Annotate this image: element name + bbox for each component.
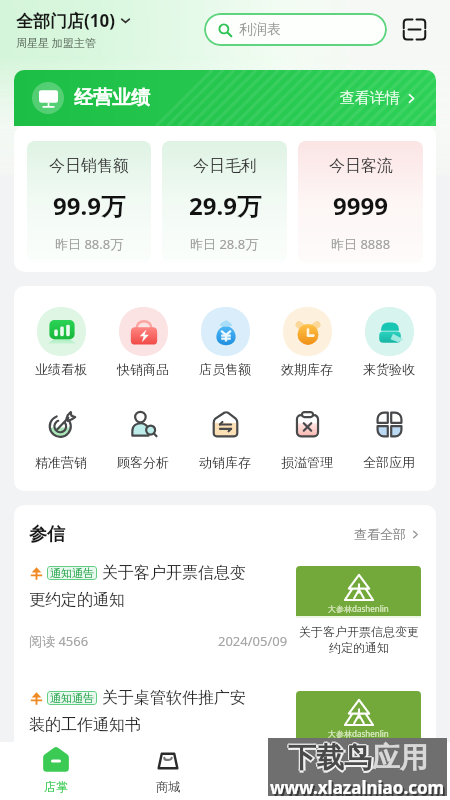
staticText: 昨日 8888 <box>331 235 391 253</box>
staticText: 业绩看板 <box>35 361 87 377</box>
button[interactable]: 商城 <box>112 742 224 800</box>
button[interactable]: 顾客分析 <box>102 400 184 470</box>
staticText: 损溢管理 <box>281 454 333 470</box>
staticText: 关于客户开票信息变 <box>102 563 246 583</box>
button[interactable]: 消息 <box>224 742 337 800</box>
button[interactable]: 动销库存 <box>184 400 266 470</box>
staticText: 店掌 <box>44 779 68 794</box>
staticText: 利润表 <box>239 21 281 39</box>
staticText: 2024/05/09 <box>218 632 288 650</box>
button[interactable]: 通知通告 <box>29 688 421 788</box>
staticText: 动销库存 <box>199 454 251 470</box>
button[interactable]: 通知通告 <box>29 563 421 688</box>
staticText: 更约定的通知 <box>29 590 125 610</box>
button[interactable]: 精准营销 <box>20 400 102 470</box>
staticText: 今日销售额 <box>49 156 129 176</box>
staticText: 约定的通知 <box>329 640 389 655</box>
staticText: 9999 <box>333 189 388 222</box>
staticText: 今日客流 <box>329 156 393 176</box>
button[interactable]: 快销商品 <box>102 307 184 377</box>
staticText: 商城 <box>156 779 180 794</box>
staticText: 全部应用 <box>363 454 415 470</box>
staticText: 下载鸟 <box>290 740 374 775</box>
staticText: 我的 <box>382 779 406 794</box>
staticText: 下载鸟 <box>288 742 372 777</box>
button[interactable]: 全部应用 <box>348 400 430 470</box>
button[interactable]: 我的 <box>337 742 450 800</box>
button[interactable]: 来货验收 <box>348 307 430 377</box>
button[interactable]: 效期库存 <box>266 307 348 377</box>
staticText: 查看全部 <box>354 526 406 542</box>
button[interactable]: 经营业绩 <box>14 70 436 126</box>
staticText: 下载鸟 <box>288 740 372 775</box>
staticText: 昨日 88.8万 <box>55 235 124 253</box>
staticText: 全部门店(10) <box>16 9 115 32</box>
staticText: 装的工作通知书 <box>29 715 141 735</box>
button[interactable]: Scan code <box>399 14 429 44</box>
staticText: 效期库存 <box>281 361 333 377</box>
staticText: 店员售额 <box>199 361 251 377</box>
button[interactable]: 店掌 <box>0 742 112 800</box>
staticText: 快销商品 <box>117 361 169 377</box>
staticText: 查看详情 <box>340 89 400 108</box>
button[interactable]: 今日毛利 <box>162 141 287 263</box>
staticText: 29.9万 <box>189 189 261 222</box>
staticText: 关于桌管软件推广安装 <box>299 749 419 764</box>
staticText: 通知通告 <box>50 566 94 580</box>
staticText: 来货验收 <box>363 361 415 377</box>
staticText: 大参林dashenlin <box>328 728 389 739</box>
staticText: 应用 <box>372 740 428 775</box>
staticText: 关于客户开票信息变更 <box>299 624 419 639</box>
button[interactable]: 全部门店(10) <box>16 9 131 50</box>
staticText: 99.9万 <box>53 189 125 222</box>
button[interactable]: 利润表 <box>204 13 387 46</box>
staticText: 今日毛利 <box>193 156 257 176</box>
staticText: www.xlazalniao.com <box>270 776 445 796</box>
button[interactable]: 店员售额 <box>184 307 266 377</box>
button[interactable]: 今日销售额 <box>27 141 151 263</box>
staticText: 通知通告 <box>50 691 94 705</box>
button[interactable]: 今日客流 <box>298 141 423 263</box>
staticText: www.xlazalniao.com <box>272 778 447 798</box>
staticText: 经营业绩 <box>74 86 150 110</box>
button[interactable]: 查看全部 <box>354 526 421 542</box>
staticText: 关于桌管软件推广安 <box>102 688 246 708</box>
staticText: 顾客分析 <box>117 454 169 470</box>
staticText: 精准营销 <box>35 454 87 470</box>
button[interactable]: 业绩看板 <box>20 307 102 377</box>
staticText: 阅读 4566 <box>29 632 89 650</box>
staticText: 昨日 28.8万 <box>190 235 259 253</box>
button[interactable]: 损溢管理 <box>266 400 348 470</box>
staticText: 大参林dashenlin <box>328 603 389 614</box>
staticText: 下载鸟 <box>287 740 371 775</box>
staticText: 的工作通知书 <box>323 765 395 780</box>
staticText: 参信 <box>29 523 65 546</box>
staticText: 周星星 加盟主管 <box>16 35 96 50</box>
staticText: 消息 <box>269 779 293 794</box>
staticText: 下载鸟 <box>288 739 372 774</box>
